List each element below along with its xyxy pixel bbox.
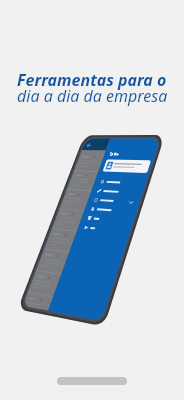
staticText: Ferramentas para o <box>17 69 167 91</box>
staticText: dia a dia da empresa <box>17 85 168 107</box>
